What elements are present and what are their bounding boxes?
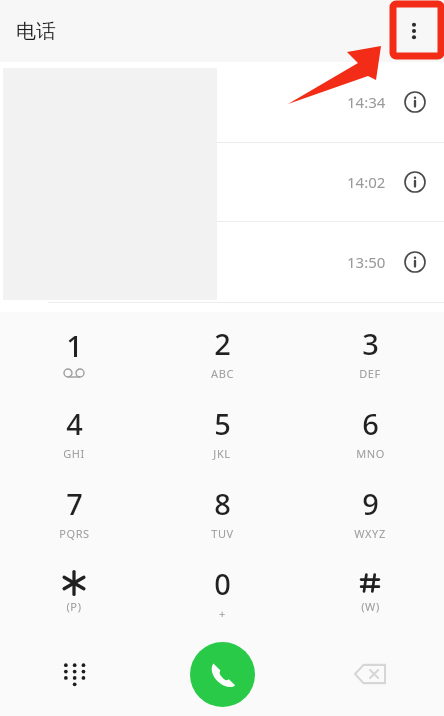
staticText: WXYZ: [354, 526, 386, 541]
staticText: DEF: [359, 366, 381, 381]
button[interactable]: (W): [296, 552, 444, 632]
staticText: 7: [66, 484, 83, 523]
staticText: 13:50: [347, 252, 386, 272]
staticText: 5: [214, 404, 231, 443]
button[interactable]: 7: [0, 472, 148, 552]
button[interactable]: Hide dialpad: [48, 648, 100, 700]
staticText: 电话: [16, 19, 56, 44]
staticText: 8: [214, 484, 231, 523]
button[interactable]: 6: [296, 392, 444, 472]
button[interactable]: 14:34: [0, 62, 444, 142]
staticText: 3: [362, 324, 379, 363]
staticText: GHI: [63, 446, 85, 461]
button[interactable]: 9: [296, 472, 444, 552]
staticText: 1: [66, 326, 83, 365]
staticText: +: [219, 606, 226, 621]
button[interactable]: 3: [296, 312, 444, 392]
button[interactable]: 14:02: [0, 143, 444, 221]
staticText: 9: [362, 484, 379, 523]
staticText: PQRS: [59, 526, 90, 541]
button[interactable]: 4: [0, 392, 148, 472]
staticText: 0: [214, 564, 231, 603]
button[interactable]: 5: [148, 392, 296, 472]
staticText: 14:02: [347, 172, 386, 192]
button[interactable]: 8: [148, 472, 296, 552]
staticText: 14:34: [347, 92, 386, 112]
button[interactable]: Call details: [398, 245, 432, 279]
staticText: ABC: [211, 366, 234, 381]
button[interactable]: More options: [390, 7, 438, 55]
button[interactable]: 1: [0, 312, 148, 392]
button[interactable]: (P): [0, 552, 148, 632]
button[interactable]: 13:50: [0, 222, 444, 302]
button[interactable]: Call details: [398, 85, 432, 119]
staticText: 2: [214, 324, 231, 363]
button[interactable]: 2: [148, 312, 296, 392]
button[interactable]: 0: [148, 552, 296, 632]
staticText: (W): [361, 599, 380, 614]
staticText: 4: [66, 404, 83, 443]
staticText: (P): [66, 599, 82, 614]
staticText: MNO: [356, 446, 385, 461]
staticText: 6: [362, 404, 379, 443]
button[interactable]: Call: [190, 642, 255, 707]
button[interactable]: Backspace: [344, 648, 396, 700]
staticText: JKL: [213, 446, 231, 461]
button[interactable]: Call details: [398, 165, 432, 199]
staticText: TUV: [211, 526, 234, 541]
